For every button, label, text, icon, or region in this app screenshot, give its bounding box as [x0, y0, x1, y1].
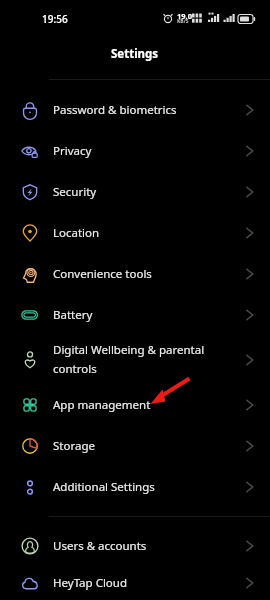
staticText: 19:56: [42, 12, 68, 26]
button[interactable]: App management: [0, 384, 270, 425]
staticText: Settings: [111, 46, 159, 62]
staticText: Battery: [53, 307, 93, 323]
button[interactable]: Password & biometrics: [0, 89, 270, 130]
staticText: App management: [53, 397, 151, 413]
staticText: HeyTap Cloud: [53, 575, 128, 591]
staticText: Convenience tools: [53, 266, 152, 282]
staticText: Privacy: [53, 143, 92, 159]
staticText: KB/S: [177, 18, 189, 25]
button[interactable]: Users & accounts: [0, 525, 270, 566]
staticText: Location: [53, 225, 100, 241]
button[interactable]: Convenience tools: [0, 253, 270, 294]
button[interactable]: Location: [0, 212, 270, 253]
button[interactable]: Storage: [0, 425, 270, 466]
staticText: Digital Wellbeing & parental controls: [53, 342, 205, 377]
button[interactable]: Additional Settings: [0, 466, 270, 507]
button[interactable]: Digital Wellbeing & parental controls: [0, 335, 270, 384]
staticText: Security: [53, 184, 97, 200]
staticText: Additional Settings: [53, 479, 155, 495]
button[interactable]: HeyTap Cloud: [0, 566, 270, 600]
staticText: Users & accounts: [53, 538, 147, 554]
staticText: Storage: [53, 438, 95, 454]
button[interactable]: Battery: [0, 294, 270, 335]
staticText: 19.0: [177, 11, 192, 21]
button[interactable]: Security: [0, 171, 270, 212]
staticText: Password & biometrics: [53, 102, 177, 118]
button[interactable]: Privacy: [0, 130, 270, 171]
